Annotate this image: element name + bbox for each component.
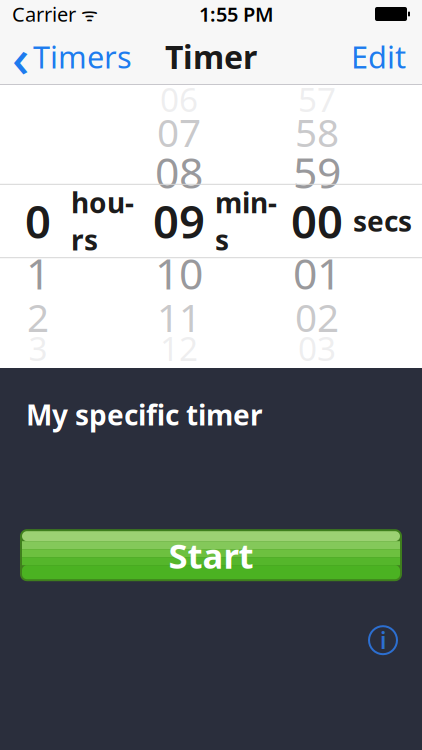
staticText: 10 [155,245,203,301]
staticText: ‹ [12,21,29,92]
staticText: 2 [27,291,49,343]
staticText: hours [71,184,134,258]
staticText: 0 [25,191,51,251]
staticText: My specific timer [26,396,263,433]
staticText: 1 [26,245,50,301]
staticText: 03 [298,326,336,370]
staticText: 12 [160,326,198,370]
staticText: 59 [293,144,341,200]
button[interactable]: Edit [335,28,422,85]
staticText: Edit [351,36,406,77]
staticText: 1:55 PM [199,1,274,27]
staticText: 09 [153,191,205,251]
staticText: i [380,625,386,655]
staticText: secs [353,202,412,240]
staticText: 11 [157,291,201,343]
button[interactable]: ‹ [0,28,144,85]
staticText: 06 [160,77,198,121]
staticText: 57 [298,77,336,121]
staticText: Timer [165,35,257,78]
button[interactable]: Start [20,529,402,581]
button[interactable]: Info [366,623,400,657]
staticText: Timers [33,36,132,77]
staticText: ᯤ [76,2,98,26]
staticText: Start [168,532,253,578]
staticText: 07 [157,106,201,158]
staticText: mins [215,184,277,258]
staticText: 01 [293,245,341,301]
staticText: 02 [295,291,339,343]
staticText: Carrier [12,1,76,27]
staticText: 00 [291,191,343,251]
staticText: 58 [295,106,339,158]
staticText: 3 [28,326,47,370]
staticText: 08 [155,144,203,200]
